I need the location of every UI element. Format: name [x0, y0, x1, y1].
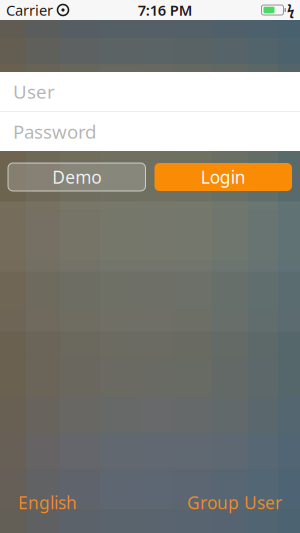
staticText: Group User: [187, 491, 282, 514]
staticText: Login: [201, 165, 246, 188]
staticText: 7:16 PM: [138, 0, 193, 20]
staticText: Demo: [52, 165, 101, 188]
button[interactable]: Group User: [187, 491, 282, 514]
button[interactable]: Login: [154, 163, 292, 191]
staticText: English: [18, 491, 77, 514]
button[interactable]: User: [0, 72, 300, 111]
button[interactable]: English: [18, 491, 77, 514]
staticText: ϟ: [287, 1, 294, 19]
staticText: Password: [13, 119, 96, 144]
staticText: User: [13, 79, 55, 104]
button[interactable]: Password: [0, 112, 300, 151]
button[interactable]: Demo: [8, 163, 145, 191]
staticText: Carrier: [6, 0, 53, 20]
